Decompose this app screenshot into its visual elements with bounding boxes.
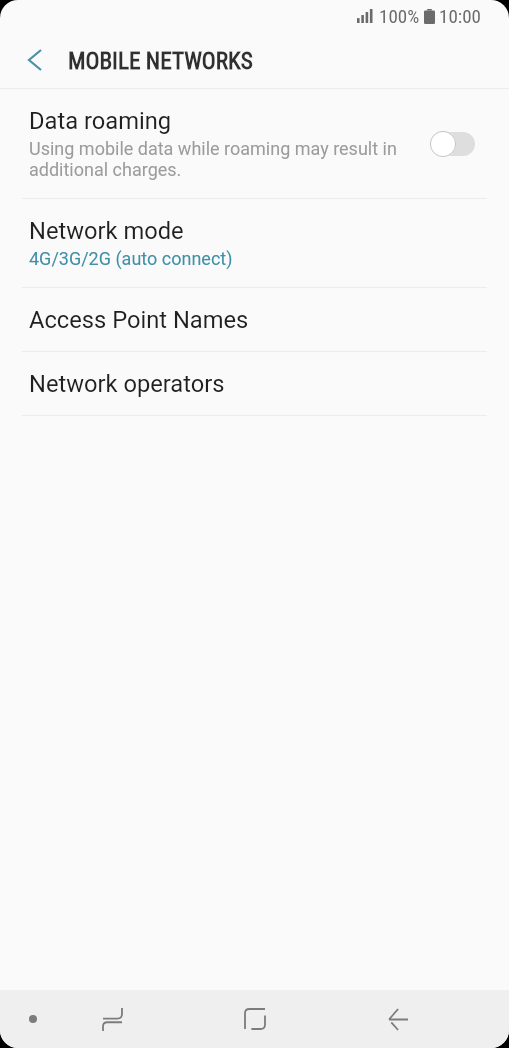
- staticText: 4G/3G/2G (auto connect): [29, 248, 233, 269]
- button[interactable]: Access Point Names: [0, 288, 509, 351]
- button[interactable]: Data roaming off: [430, 129, 475, 159]
- button[interactable]: Data roaming: [0, 89, 509, 198]
- staticText: Network operators: [29, 370, 225, 398]
- button[interactable]: Home: [226, 990, 284, 1048]
- staticText: Using mobile data while roaming may resu…: [29, 139, 397, 181]
- button[interactable]: More options: [4, 990, 62, 1048]
- button[interactable]: Recents: [83, 990, 141, 1048]
- button[interactable]: Network mode: [0, 199, 509, 287]
- button[interactable]: Network operators: [0, 352, 509, 415]
- button[interactable]: Navigate up: [0, 32, 68, 88]
- staticText: Network mode: [29, 217, 184, 245]
- staticText: 100%: [379, 5, 420, 27]
- staticText: 10:00: [439, 5, 481, 27]
- staticText: Data roaming: [29, 107, 172, 135]
- staticText: Access Point Names: [29, 306, 249, 334]
- button[interactable]: Back: [369, 990, 427, 1048]
- staticText: MOBILE NETWORKS: [68, 47, 253, 74]
